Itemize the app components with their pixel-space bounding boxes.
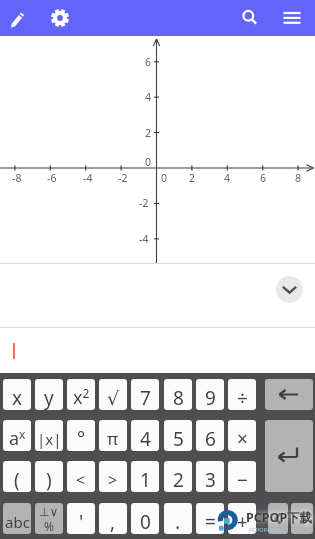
button[interactable]: |x| [35,420,63,451]
staticText: < [76,469,86,491]
staticText: ° [77,426,86,451]
staticText: 2 [145,126,152,140]
staticText: > [108,469,118,491]
staticText: -4 [83,171,93,185]
button[interactable]: 8 [164,379,192,410]
staticText: -2 [118,171,128,185]
staticText: -4 [139,232,149,246]
staticText: abc [5,512,30,532]
staticText: ' [79,509,84,534]
staticText: ) [46,467,52,492]
button[interactable]: 9 [196,379,224,410]
button[interactable]: 7 [131,379,159,410]
staticText: PCPOP下载 [246,509,313,526]
button[interactable]: √ [99,379,127,410]
button[interactable]: x [3,379,31,410]
staticText: 5 [173,426,184,451]
button[interactable]: 5 [164,420,192,451]
staticText: 4 [145,90,152,104]
staticText: x [12,385,23,410]
button[interactable]: 4 [131,420,159,451]
staticText: 0 [161,171,168,185]
button[interactable] [4,2,32,34]
button[interactable]: ⊥∨ [35,503,63,534]
staticText: PCPOP.COM [249,526,280,533]
button[interactable]: . [164,503,192,534]
staticText: 3 [205,467,216,492]
staticText: . [175,509,181,534]
button[interactable]: π [99,420,127,451]
staticText: 2 [189,171,196,185]
button[interactable] [291,503,313,534]
button[interactable]: y [35,379,63,410]
button[interactable]: 3 [196,461,224,492]
staticText: x2 [73,385,90,410]
staticText: 1 [140,467,151,492]
button[interactable]: ° [67,420,95,451]
staticText: ÷ [237,385,248,410]
staticText: 4 [140,426,151,451]
button[interactable]: ) [35,461,63,492]
staticText: 2 [173,467,184,492]
button[interactable] [265,379,313,410]
staticText: 0 [140,509,151,534]
staticText: 9 [205,385,216,410]
button[interactable]: 6 [196,420,224,451]
button[interactable]: ' [67,503,95,534]
button[interactable] [278,2,306,34]
staticText: 8 [295,171,302,185]
button[interactable] [276,276,303,303]
button[interactable]: ax [3,420,31,451]
button[interactable]: , [99,503,127,534]
button[interactable]: abc [3,503,31,534]
staticText: ( [14,467,20,492]
button[interactable]: < [67,461,95,492]
button[interactable] [265,420,313,492]
staticText: -6 [47,171,57,185]
staticText: × [237,426,248,451]
button[interactable] [0,328,315,373]
button[interactable]: 0 [131,503,159,534]
staticText: √ [107,387,120,409]
staticText: 6 [260,171,267,185]
button[interactable]: × [228,420,256,451]
button[interactable]: + [228,503,256,534]
button[interactable]: ÷ [228,379,256,410]
staticText: y [44,385,54,410]
staticText: π [107,427,119,450]
button[interactable]: − [228,461,256,492]
button[interactable]: ( [3,461,31,492]
button[interactable] [268,503,288,534]
staticText: 4 [224,171,231,185]
staticText: 0 [145,155,152,169]
button[interactable]: 1 [131,461,159,492]
staticText: 7 [140,385,151,410]
button[interactable]: x2 [67,379,95,410]
button[interactable]: = [196,503,224,534]
staticText: = [205,509,216,534]
button[interactable] [234,2,262,34]
button[interactable]: > [99,461,127,492]
staticText: -2 [139,196,149,210]
staticText: + [237,509,248,534]
staticText: % [44,518,54,534]
staticText: , [110,509,116,534]
staticText: -8 [12,171,22,185]
staticText: 6 [145,55,152,69]
button[interactable]: 2 [164,461,192,492]
staticText: 8 [173,385,184,410]
staticText: − [237,467,248,492]
staticText: |x| [37,429,62,449]
staticText: ⊥∨ [39,505,59,519]
staticText: ax [9,426,26,451]
staticText: 6 [205,426,216,451]
button[interactable] [46,2,74,34]
